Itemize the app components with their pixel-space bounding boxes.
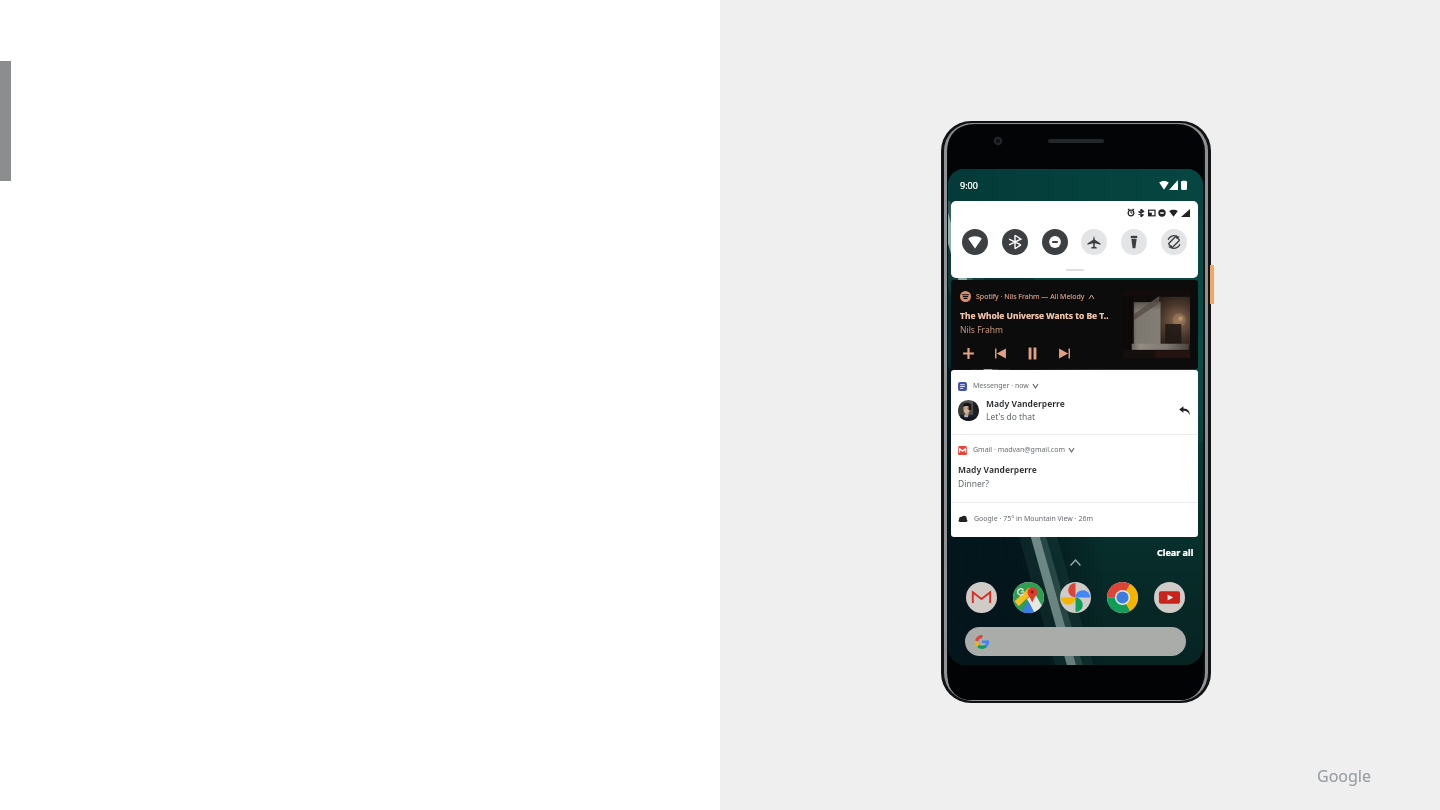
staticText: Nils Frahm — [960, 324, 1003, 336]
button[interactable]: Next — [1056, 345, 1072, 361]
button[interactable]: Spotify · Nils Frahm — All Melody — [951, 280, 1198, 369]
button[interactable]: Pause — [1024, 345, 1040, 361]
staticText: Google — [1317, 765, 1372, 787]
button[interactable]: Previous — [992, 345, 1008, 361]
button[interactable]: Add — [960, 345, 976, 361]
button[interactable]: Clear all — [1157, 546, 1194, 558]
button[interactable]: Search — [965, 627, 1186, 656]
staticText: Clear all — [1157, 546, 1194, 558]
button[interactable]: Bluetooth — [1002, 229, 1028, 255]
staticText: Gmail · madvan@gmail.com — [973, 445, 1065, 455]
staticText: Messenger · now — [973, 381, 1029, 391]
button[interactable]: Chrome — [1107, 582, 1138, 613]
button[interactable]: Flashlight — [1121, 229, 1147, 255]
button[interactable]: YouTube — [1154, 582, 1185, 613]
button[interactable]: Reply — [1178, 404, 1191, 417]
button[interactable]: Messenger · now — [951, 370, 1198, 434]
staticText: Dinner? — [958, 478, 989, 490]
staticText: Mady Vanderperre — [986, 398, 1065, 410]
button[interactable]: Airplane mode — [1081, 229, 1107, 255]
button[interactable]: Photos — [1060, 582, 1091, 613]
button[interactable]: Do not disturb — [1042, 229, 1068, 255]
staticText: Google · 75° in Mountain View · 26m — [974, 514, 1093, 524]
button[interactable]: Maps — [1013, 582, 1044, 613]
button[interactable]: Google — [1317, 765, 1372, 787]
button[interactable]: Google · 75° in Mountain View · 26m — [951, 503, 1198, 537]
staticText: Spotify · Nils Frahm — All Melody — [976, 292, 1085, 302]
staticText: Mady Vanderperre — [958, 464, 1037, 476]
button[interactable]: Gmail · madvan@gmail.com — [951, 435, 1198, 502]
staticText: 9:00 — [960, 179, 978, 191]
staticText: Let's do that — [986, 411, 1036, 423]
button[interactable]: Wi-Fi — [962, 229, 988, 255]
button[interactable]: Gmail — [966, 582, 997, 613]
button[interactable]: Auto rotate — [1161, 229, 1187, 255]
staticText: The Whole Universe Wants to Be T.. — [960, 310, 1109, 322]
